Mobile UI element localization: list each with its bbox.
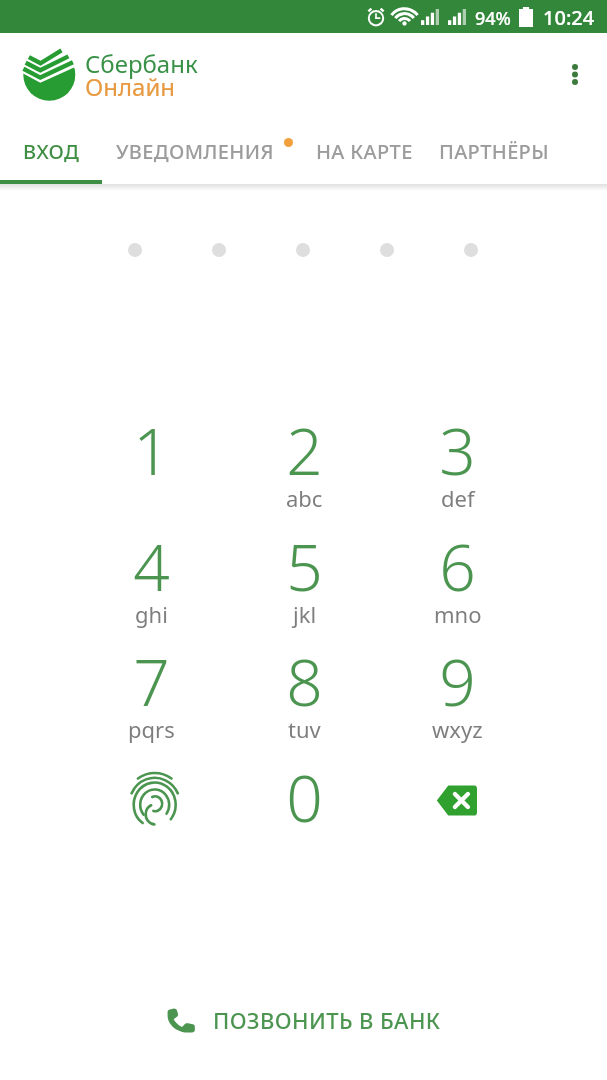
staticText: Онлайн — [85, 70, 176, 103]
button[interactable]: More options — [551, 50, 599, 98]
staticText: 5 — [286, 523, 323, 610]
staticText: 6 — [439, 523, 476, 610]
staticText: 10:24 — [543, 4, 595, 31]
button[interactable]: НА КАРТЕ — [300, 123, 428, 184]
button[interactable]: ПАРТНЁРЫ — [428, 123, 560, 184]
button[interactable]: УВЕДОМЛЕНИЯ — [102, 123, 288, 184]
button[interactable]: ПОЗВОНИТЬ В БАНК — [0, 991, 607, 1049]
staticText: 1 — [133, 407, 170, 494]
staticText: УВЕДОМЛЕНИЯ — [116, 138, 274, 165]
staticText: mno — [434, 599, 482, 629]
staticText: pqrs — [128, 714, 175, 744]
staticText: def — [441, 483, 475, 513]
button[interactable]: 1 — [75, 415, 228, 531]
button[interactable]: 9 — [381, 646, 534, 762]
staticText: tuv — [288, 714, 321, 744]
staticText: 4 — [133, 523, 170, 610]
staticText: 7 — [133, 638, 170, 725]
staticText: 3 — [439, 407, 476, 494]
button[interactable]: 0 — [228, 762, 381, 878]
staticText: 8 — [286, 638, 323, 725]
staticText: Сбербанк — [85, 47, 198, 80]
button[interactable]: Backspace — [380, 760, 533, 840]
staticText: ВХОД — [23, 138, 80, 165]
staticText: 94% — [475, 6, 511, 31]
button[interactable]: 8 — [228, 646, 381, 762]
staticText: ghi — [135, 599, 168, 629]
button[interactable]: 4 — [75, 531, 228, 647]
button[interactable]: Fingerprint login — [78, 766, 231, 850]
staticText: jkl — [293, 599, 317, 629]
button[interactable]: ВХОД — [0, 123, 102, 184]
staticText: НА КАРТЕ — [316, 138, 413, 165]
staticText: ПОЗВОНИТЬ В БАНК — [213, 1005, 441, 1035]
button[interactable]: 2 — [228, 415, 381, 531]
button[interactable]: 6 — [381, 531, 534, 647]
button[interactable]: 7 — [75, 646, 228, 762]
staticText: abc — [286, 483, 323, 513]
staticText: 2 — [286, 407, 323, 494]
button[interactable]: 5 — [228, 531, 381, 647]
staticText: wxyz — [432, 714, 483, 744]
staticText: 9 — [439, 638, 476, 725]
staticText: ПАРТНЁРЫ — [439, 138, 549, 165]
button[interactable]: 3 — [381, 415, 534, 531]
staticText: 0 — [286, 754, 323, 841]
